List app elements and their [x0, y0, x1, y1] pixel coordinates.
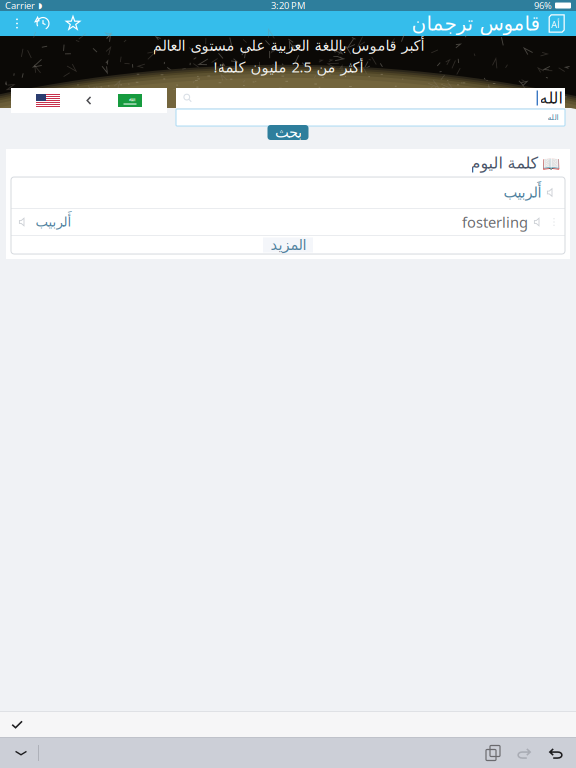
- button[interactable]: Copy: [478, 738, 508, 768]
- staticText: أA: [550, 18, 559, 31]
- button[interactable]: قاموس ترجمان: [407, 11, 570, 36]
- button[interactable]: ﷲ: [11, 88, 167, 113]
- staticText: كلمة اليوم: [470, 154, 538, 172]
- button[interactable]: Hide keyboard: [4, 738, 38, 768]
- staticText: أَلربيب: [503, 184, 541, 201]
- staticText: ◗: [38, 1, 42, 10]
- staticText: الله: [539, 89, 562, 107]
- button[interactable]: أَلربيب: [11, 177, 565, 208]
- button[interactable]: المزيد: [263, 237, 313, 252]
- staticText: بحث: [274, 124, 301, 141]
- button[interactable]: Favourites: [58, 11, 88, 36]
- staticText: أَلربيب: [35, 214, 71, 229]
- button[interactable]: الله: [176, 88, 565, 108]
- staticText: قاموس ترجمان: [411, 12, 540, 35]
- staticText: المزيد: [270, 237, 306, 253]
- button[interactable]: أَلربيب: [11, 209, 565, 235]
- button[interactable]: History: [28, 11, 58, 36]
- staticText: fosterling: [462, 212, 528, 232]
- button[interactable]: بحث: [267, 125, 308, 140]
- button[interactable]: More options: [6, 11, 28, 36]
- staticText: 3:20 PM: [271, 0, 305, 12]
- button[interactable]: Done: [0, 713, 34, 735]
- staticText: أكثر من 2.5 مليون كلمة!: [213, 57, 363, 77]
- staticText: 📖: [538, 153, 560, 173]
- staticText: ﷲ: [128, 96, 131, 102]
- button[interactable]: Undo: [540, 738, 572, 768]
- button[interactable]: Redo: [508, 738, 540, 768]
- staticText: الله: [547, 113, 558, 122]
- staticText: Carrier: [5, 0, 35, 12]
- staticText: 96%: [534, 0, 552, 12]
- staticText: أكبر قاموس باللغة العربية على مستوى العا…: [152, 37, 424, 54]
